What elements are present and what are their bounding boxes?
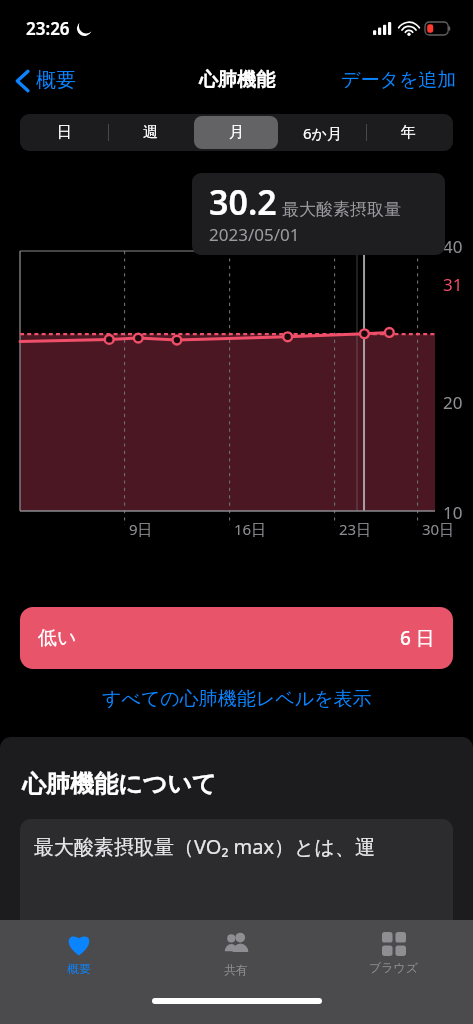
button[interactable]: 概要 bbox=[12, 64, 80, 97]
button[interactable]: 週 bbox=[108, 116, 192, 149]
button[interactable]: 共有 bbox=[157, 920, 315, 986]
staticText: 週 bbox=[143, 123, 158, 142]
staticText: 16日 bbox=[234, 519, 267, 539]
button[interactable]: データを追加 bbox=[339, 62, 459, 98]
staticText: 最大酸素摂取量（VO₂ max）とは、運 bbox=[34, 833, 376, 860]
button[interactable]: 月 bbox=[194, 116, 278, 149]
staticText: 月 bbox=[229, 123, 244, 142]
staticText: 心肺機能について bbox=[22, 769, 217, 799]
staticText: 6 日 bbox=[400, 625, 435, 651]
staticText: 共有 bbox=[224, 962, 248, 977]
button[interactable]: 低い bbox=[20, 607, 453, 669]
staticText: 低い bbox=[38, 626, 77, 650]
button[interactable]: 年 bbox=[366, 116, 450, 149]
button[interactable]: 6か月 bbox=[280, 116, 364, 149]
staticText: 日 bbox=[57, 123, 72, 142]
staticText: 最大酸素摂取量 bbox=[282, 199, 401, 220]
staticText: 概要 bbox=[67, 961, 91, 976]
staticText: 年 bbox=[401, 123, 416, 142]
button[interactable]: 概要 bbox=[0, 920, 157, 986]
staticText: 9日 bbox=[129, 519, 153, 539]
staticText: データを追加 bbox=[341, 68, 457, 92]
button[interactable]: 最大酸素摂取量（VO₂ max）とは、運 bbox=[20, 819, 453, 939]
staticText: 30日 bbox=[422, 519, 455, 539]
staticText: 心肺機能 bbox=[199, 68, 275, 92]
staticText: すべての心肺機能レベルを表示 bbox=[102, 687, 372, 711]
staticText: 40 bbox=[443, 235, 463, 258]
staticText: 23:26 bbox=[26, 17, 70, 40]
staticText: 30.2 bbox=[209, 179, 277, 225]
staticText: 31 bbox=[443, 273, 463, 296]
staticText: 10 bbox=[443, 501, 463, 524]
button[interactable]: 日 bbox=[23, 116, 106, 149]
staticText: 概要 bbox=[36, 68, 76, 93]
staticText: 20 bbox=[443, 391, 463, 414]
button[interactable]: すべての心肺機能レベルを表示 bbox=[0, 683, 473, 715]
staticText: ブラウズ bbox=[369, 960, 419, 975]
staticText: 6か月 bbox=[303, 123, 342, 143]
staticText: 23日 bbox=[339, 519, 372, 539]
button[interactable]: ブラウズ bbox=[315, 920, 473, 986]
staticText: 2023/05/01 bbox=[209, 223, 300, 246]
